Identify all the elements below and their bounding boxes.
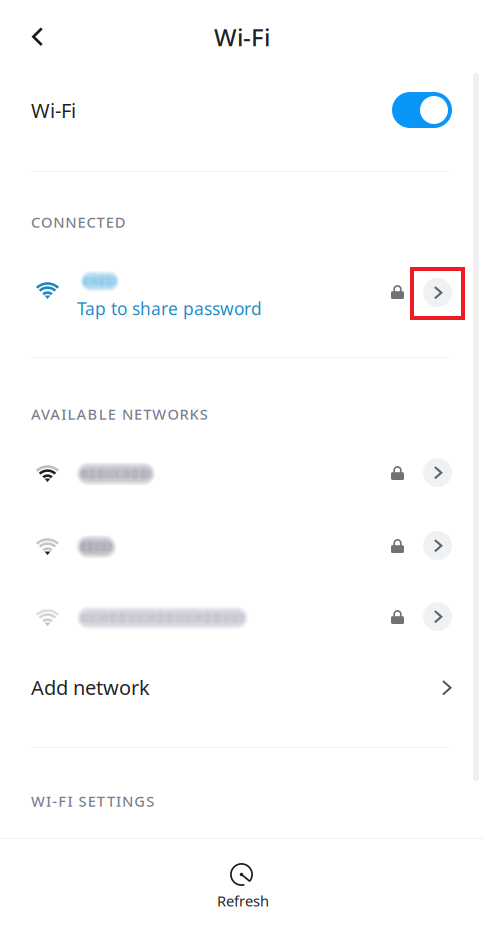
- staticText: Tap to share password: [77, 297, 262, 320]
- staticText: Refresh: [217, 891, 269, 910]
- staticText: Wi-Fi: [31, 97, 76, 124]
- button[interactable]: Network details: [423, 278, 452, 307]
- button[interactable]: Wi-Fi: [0, 80, 483, 140]
- button[interactable]: Back: [14, 14, 60, 60]
- button[interactable]: Network details: [423, 531, 452, 560]
- button[interactable]: Network details: [423, 602, 452, 631]
- staticText: Wi-Fi: [214, 21, 270, 53]
- button[interactable]: [0, 593, 483, 640]
- button[interactable]: [0, 449, 483, 496]
- button[interactable]: Tap to share password: [0, 262, 483, 324]
- button[interactable]: Wi-Fi on: [392, 92, 452, 128]
- staticText: Add network: [31, 674, 150, 701]
- staticText: AVAILABLE NETWORKS: [31, 404, 208, 424]
- staticText: CONNECTED: [31, 212, 126, 232]
- button[interactable]: Refresh: [0, 839, 483, 933]
- button[interactable]: [0, 522, 483, 569]
- button[interactable]: Add network: [0, 658, 483, 718]
- staticText: WI-FI SETTINGS: [31, 791, 154, 811]
- button[interactable]: Network details: [423, 458, 452, 487]
